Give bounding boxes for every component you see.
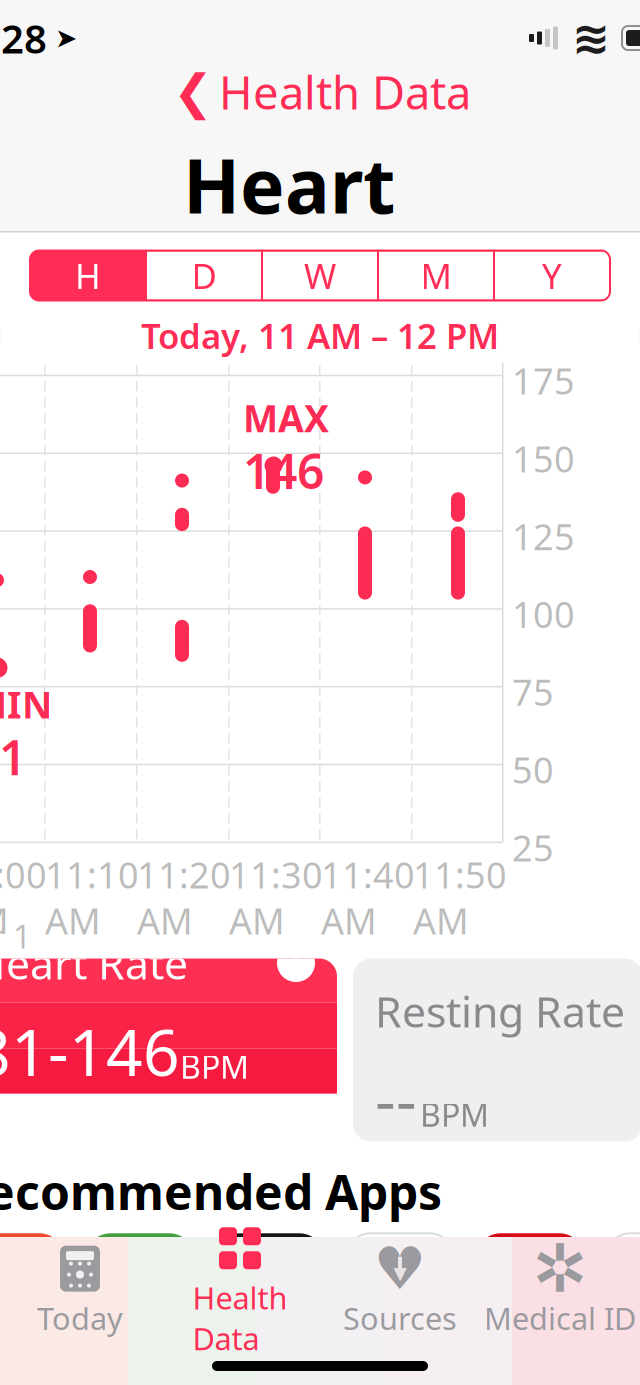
staticText: AM (0, 897, 9, 944)
staticText: AM (321, 897, 377, 944)
staticText: Today, 11 AM – 12 PM (141, 312, 499, 358)
button[interactable]: W (262, 250, 378, 300)
staticText: i (291, 940, 301, 986)
staticText: 75 (512, 668, 554, 716)
staticText: 100 (512, 590, 575, 638)
staticText: ❮ (173, 65, 213, 119)
staticText: Medical ID (484, 1298, 636, 1338)
staticText: ✲ (532, 1231, 588, 1306)
staticText: MAX (243, 393, 329, 443)
staticText: H (75, 252, 101, 298)
staticText: Heart (183, 135, 395, 234)
button[interactable]: Health Data (160, 1247, 320, 1337)
staticText: 11:50 (413, 851, 507, 899)
staticText: ♥ (373, 1235, 426, 1302)
staticText: Sources (343, 1298, 457, 1338)
staticText: MIN (0, 679, 52, 729)
staticText: Recommended Apps (0, 1159, 442, 1223)
staticText: M (420, 252, 451, 298)
staticText: Health Data (219, 62, 471, 122)
button[interactable]: D (146, 250, 262, 300)
staticText: Heart Rate (0, 935, 188, 991)
staticText: -- (375, 1056, 417, 1141)
button[interactable]: Y (494, 250, 610, 300)
staticText: 125 (512, 512, 575, 560)
staticText: ≋ (572, 12, 610, 64)
button[interactable]: H (30, 250, 146, 300)
button[interactable]: ♥ (320, 1247, 480, 1337)
staticText: 7:28 (0, 11, 47, 64)
button[interactable]: Heart Rate (0, 958, 337, 1141)
staticText: AM (137, 897, 193, 944)
staticText: Today (37, 1298, 123, 1338)
staticText: ▼ (393, 1263, 406, 1283)
staticText: 50 (512, 746, 554, 794)
staticText: 146 (243, 439, 324, 502)
staticText: 81-146 (0, 1009, 180, 1094)
staticText: 11:40 (321, 851, 415, 899)
staticText: 81 (0, 725, 26, 789)
staticText: W (304, 252, 336, 298)
staticText: Apr 1 (0, 915, 31, 957)
staticText: AM (413, 897, 469, 944)
staticText: Resting Rate (375, 982, 625, 1039)
staticText: 150 (512, 435, 575, 482)
staticText: BPM (420, 1093, 489, 1135)
staticText: 25 (512, 824, 554, 871)
staticText: Health Data (192, 1277, 287, 1359)
staticText: AM (229, 897, 285, 944)
staticText: 11:00 (0, 851, 47, 899)
staticText: 11:30 (229, 851, 323, 899)
button[interactable]: ❮ (153, 65, 487, 119)
staticText: D (191, 252, 216, 298)
staticText: AM (45, 897, 101, 944)
button[interactable]: Next hour (639, 308, 640, 362)
staticText: Today, 11 AM – 12 PM (0, 1094, 276, 1189)
button[interactable]: ✲ (480, 1247, 640, 1337)
staticText: 175 (512, 357, 575, 405)
staticText: 11:20 (137, 851, 231, 899)
staticText: 11:10 (45, 851, 139, 899)
staticText: BPM (180, 1045, 249, 1088)
staticText: Y (542, 252, 562, 298)
button[interactable]: Today (0, 1247, 160, 1337)
button[interactable]: M (378, 250, 494, 300)
staticText: ➤ (47, 23, 77, 53)
button[interactable]: Previous hour (0, 308, 1, 362)
button[interactable]: Resting Rate (353, 958, 640, 1141)
